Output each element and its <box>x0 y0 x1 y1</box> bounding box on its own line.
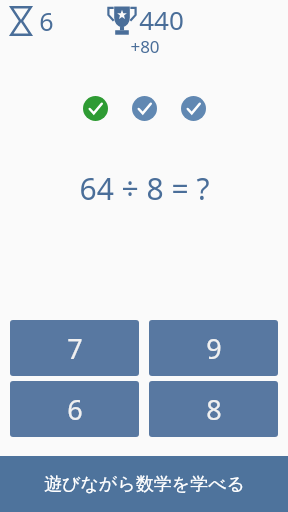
button[interactable]: Trophy score <box>105 2 184 60</box>
button[interactable]: 7 <box>10 320 139 376</box>
other: Trophy score <box>105 4 139 36</box>
staticText: 遊びながら数学を学べる <box>44 473 245 496</box>
button[interactable]: Lives remaining <box>8 4 56 38</box>
button[interactable]: 遊びながら数学を学べる <box>0 456 288 512</box>
staticText: 8 <box>206 391 222 428</box>
staticText: 6 <box>67 391 83 428</box>
button[interactable]: 6 <box>10 381 139 437</box>
button[interactable]: 8 <box>149 381 278 437</box>
staticText: 64 ÷ 8 = ? <box>79 168 210 209</box>
staticText: 7 <box>67 330 83 367</box>
button[interactable]: Answered correctly <box>181 96 206 121</box>
button[interactable]: Answered correctly <box>83 96 108 121</box>
staticText: +80 <box>130 35 160 58</box>
button[interactable]: 9 <box>149 320 278 376</box>
staticText: 6 <box>39 4 54 38</box>
button[interactable]: Answered correctly <box>132 96 157 121</box>
other: Lives remaining <box>10 6 32 36</box>
staticText: 440 <box>139 2 184 37</box>
staticText: 9 <box>206 330 222 367</box>
